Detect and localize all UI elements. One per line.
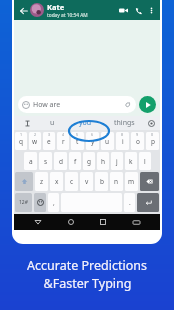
button[interactable]: c: [65, 172, 78, 191]
button[interactable]: 3: [43, 132, 55, 150]
staticText: you: [79, 118, 92, 128]
staticText: e: [47, 137, 51, 146]
staticText: g: [87, 157, 91, 166]
staticText: 12#: [19, 199, 28, 206]
button[interactable]: More options: [146, 5, 157, 16]
staticText: 5: [76, 132, 79, 137]
button[interactable]: [30, 3, 44, 17]
staticText: z: [40, 177, 44, 186]
button[interactable]: Switch keyboard: [128, 214, 144, 230]
staticText: Kate: [47, 2, 65, 12]
button[interactable]: x: [50, 172, 63, 191]
button[interactable]: u: [38, 116, 67, 130]
staticText: x: [55, 177, 59, 186]
staticText: w: [32, 137, 38, 146]
staticText: o: [136, 137, 140, 146]
button[interactable]: 1: [15, 132, 27, 150]
button[interactable]: d: [54, 152, 67, 170]
button[interactable]: l: [139, 152, 151, 170]
button[interactable]: Call: [131, 3, 146, 18]
staticText: 8: [121, 132, 124, 137]
staticText: i: [122, 137, 124, 146]
button[interactable]: f: [69, 152, 81, 170]
button[interactable]: Video call: [116, 3, 131, 18]
staticText: How are: [33, 100, 123, 110]
button[interactable]: 8: [116, 132, 129, 150]
staticText: a: [29, 157, 33, 166]
button[interactable]: Enter: [137, 193, 159, 212]
button[interactable]: Backspace: [140, 172, 159, 191]
staticText: 4: [62, 132, 65, 137]
staticText: 7: [106, 132, 109, 137]
staticText: t: [76, 137, 79, 146]
staticText: u: [50, 118, 55, 128]
button[interactable]: Shift: [15, 172, 33, 191]
staticText: p: [151, 137, 155, 146]
staticText: 9: [136, 132, 139, 137]
staticText: 2: [34, 132, 37, 137]
staticText: 0: [151, 132, 154, 137]
button[interactable]: 9: [131, 132, 144, 150]
staticText: d: [59, 157, 63, 166]
staticText: Accurate Predictions: [27, 257, 147, 274]
staticText: h: [101, 157, 106, 166]
button[interactable]: 4: [57, 132, 69, 150]
button[interactable]: things: [104, 116, 144, 130]
button[interactable]: Back: [30, 214, 46, 230]
staticText: v: [85, 177, 89, 186]
button[interactable]: 7: [101, 132, 114, 150]
staticText: 6: [91, 132, 94, 137]
button[interactable]: 0: [146, 132, 159, 150]
button[interactable]: Settings: [144, 116, 158, 130]
button[interactable]: 2: [29, 132, 41, 150]
button[interactable]: s: [39, 152, 52, 170]
button[interactable]: Emoji: [34, 193, 46, 212]
button[interactable]: m: [125, 172, 138, 191]
button[interactable]: h: [97, 152, 109, 170]
staticText: 1: [20, 132, 23, 137]
staticText: y: [91, 137, 95, 146]
staticText: things: [114, 118, 135, 128]
button[interactable]: 12#: [15, 193, 32, 212]
staticText: q: [19, 137, 23, 146]
staticText: .: [129, 198, 131, 207]
staticText: l: [144, 157, 146, 166]
staticText: r: [62, 137, 65, 146]
button[interactable]: you: [67, 116, 104, 130]
button[interactable]: 6: [86, 132, 99, 150]
staticText: b: [100, 177, 104, 186]
button[interactable]: z: [35, 172, 48, 191]
button[interactable]: [16, 116, 38, 130]
staticText: u: [105, 137, 110, 146]
staticText: s: [44, 157, 48, 166]
staticText: n: [114, 177, 119, 186]
button[interactable]: Send: [139, 96, 156, 113]
button[interactable]: Kate: [47, 2, 116, 19]
button[interactable]: k: [125, 152, 137, 170]
button[interactable]: Back: [17, 4, 30, 17]
staticText: ,: [53, 198, 55, 207]
staticText: 3: [48, 132, 51, 137]
button[interactable]: 5: [71, 132, 84, 150]
staticText: &Faster Typing: [43, 275, 132, 292]
button[interactable]: g: [83, 152, 95, 170]
staticText: m: [128, 177, 135, 186]
staticText: f: [74, 157, 77, 166]
button[interactable]: b: [95, 172, 108, 191]
button[interactable]: Home: [63, 214, 79, 230]
staticText: j: [116, 157, 118, 166]
staticText: c: [70, 177, 74, 186]
button[interactable]: j: [111, 152, 123, 170]
button[interactable]: How are: [18, 96, 136, 113]
staticText: k: [129, 157, 133, 166]
staticText: today at 10:54 AM: [47, 12, 88, 19]
button[interactable]: .: [124, 193, 135, 212]
button[interactable]: Recents: [95, 214, 111, 230]
button[interactable]: n: [110, 172, 123, 191]
button[interactable]: Attach: [123, 100, 132, 109]
button[interactable]: v: [80, 172, 93, 191]
button[interactable]: ,: [48, 193, 59, 212]
button[interactable]: a: [24, 152, 37, 170]
